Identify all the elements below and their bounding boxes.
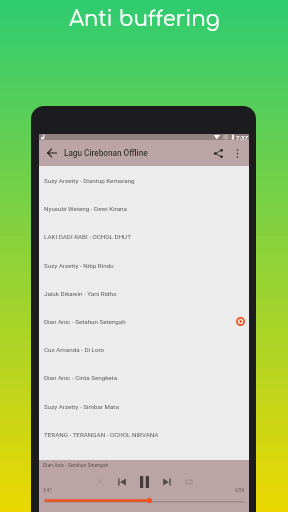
button[interactable]: Shuffle: [96, 478, 104, 486]
button[interactable]: Cus Amanda - Di Loro: [39, 335, 249, 363]
button[interactable]: Repeat: [185, 478, 193, 486]
button[interactable]: Jaluk Dikawin - Yani Ridho: [39, 279, 249, 307]
staticText: Dian Anic - Setahun Setengah: [43, 462, 109, 468]
button[interactable]: Next: [163, 478, 171, 486]
staticText: TERANG - TERANGAN - OCHOL NIRVANA: [44, 431, 159, 438]
button[interactable]: Dian Anic - Setahun Setengah: [39, 307, 249, 335]
button[interactable]: Share: [208, 143, 228, 163]
staticText: Dian Anic - Cinta Sengketa: [44, 374, 118, 381]
staticText: Suzy Arzetty - Simbar Mata: [44, 403, 119, 410]
staticText: 3:41: [43, 488, 53, 494]
button[interactable]: More options: [228, 144, 246, 162]
button[interactable]: TERANG - TERANGAN - OCHOL NIRVANA: [39, 420, 249, 448]
button[interactable]: Previous: [118, 478, 126, 486]
button[interactable]: Suzy Arzetty - Simbar Mata: [39, 392, 249, 420]
staticText: Cus Amanda - Di Loro: [44, 346, 105, 353]
button[interactable]: Dian Anic - Cinta Sengketa: [39, 363, 249, 391]
button[interactable]: Back: [42, 143, 62, 163]
staticText: 7:37: [236, 134, 248, 140]
button[interactable]: Nyusubi Weteng - Dewi Kirana: [39, 194, 249, 222]
staticText: Lagu Cirebonan Offline: [64, 148, 148, 158]
staticText: Nyusubi Weteng - Dewi Kirana: [44, 205, 127, 212]
staticText: Dian Anic - Setahun Setengah: [44, 318, 126, 325]
button[interactable]: LAKI DADI RABI - OCHOL DHUT: [39, 222, 249, 250]
staticText: LAKI DADI RABI - OCHOL DHUT: [44, 233, 131, 240]
button[interactable]: Suzy Arzetty - Diantup Kemarang: [39, 166, 249, 194]
button[interactable]: Pause: [140, 476, 149, 488]
staticText: Suzy Arzetty - Diantup Kemarang: [44, 177, 135, 184]
button[interactable]: Suzy Arzetty - Nitip Rindu: [39, 251, 249, 279]
staticText: Jaluk Dikawin - Yani Ridho: [44, 290, 117, 297]
staticText: Anti buffering: [69, 7, 220, 30]
staticText: Suzy Arzetty - Nitip Rindu: [44, 262, 114, 269]
button[interactable]: Now playing: [236, 317, 245, 326]
staticText: 6:59: [235, 488, 245, 494]
